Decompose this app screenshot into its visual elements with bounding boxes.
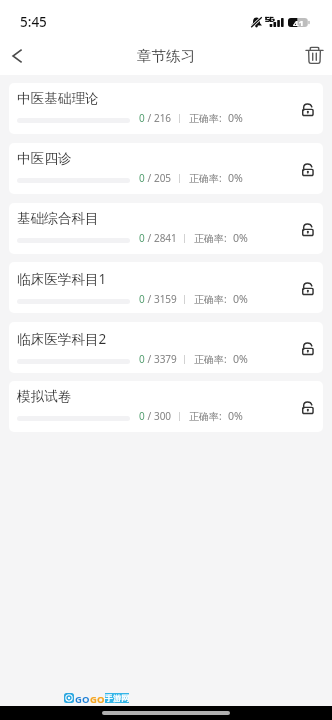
button[interactable]: 中医基础理论 [9,83,323,134]
button[interactable]: Delete [296,36,332,75]
staticText: / 300 [145,409,172,423]
button[interactable]: Locked [298,278,318,298]
staticText: GO [90,693,105,703]
staticText: 0 [139,111,145,125]
staticText: 0 [139,292,145,306]
staticText: 0% [233,352,248,366]
staticText: 正确率: [194,231,227,245]
staticText: 手游网 [105,693,129,703]
staticText: 0 [139,409,145,423]
button[interactable]: Locked [298,219,318,239]
staticText: 临床医学科目1 [17,269,107,288]
staticText: 基础综合科目 [17,210,99,227]
staticText: 0 [139,171,145,185]
button[interactable]: 模拟试卷 [9,381,323,432]
staticText: 正确率: [189,171,222,185]
staticText: / 205 [145,171,172,185]
staticText: 正确率: [189,409,222,423]
staticText: / 3159 [145,292,177,306]
staticText: / 2841 [145,231,177,245]
staticText: 0% [228,111,243,125]
button[interactable]: Locked [298,99,318,119]
staticText: GO [75,693,90,703]
staticText: 0% [233,292,248,306]
staticText: 临床医学科目2 [17,329,107,348]
staticText: 0% [228,171,243,185]
staticText: 41 [293,17,304,26]
staticText: 中医四诊 [17,150,72,167]
button[interactable]: 中医四诊 [9,143,323,194]
staticText: 0% [233,231,248,245]
button[interactable]: Back [0,36,34,75]
staticText: 0% [228,409,243,423]
staticText: 0 [139,352,145,366]
staticText: 章节练习 [137,47,196,65]
button[interactable]: 临床医学科目1 [9,262,323,313]
button[interactable]: Locked [298,397,318,417]
staticText: 正确率: [189,111,222,125]
button[interactable]: Locked [298,159,318,179]
button[interactable]: Locked [298,338,318,358]
button[interactable]: 基础综合科目 [9,203,323,254]
staticText: 5:45 [20,13,47,31]
staticText: 正确率: [194,292,227,306]
staticText: 中医基础理论 [17,90,99,107]
button[interactable]: 临床医学科目2 [9,322,323,373]
staticText: / 3379 [145,352,177,366]
staticText: 模拟试卷 [17,388,72,405]
staticText: / 216 [145,111,172,125]
staticText: 正确率: [194,352,227,366]
staticText: 0 [139,231,145,245]
